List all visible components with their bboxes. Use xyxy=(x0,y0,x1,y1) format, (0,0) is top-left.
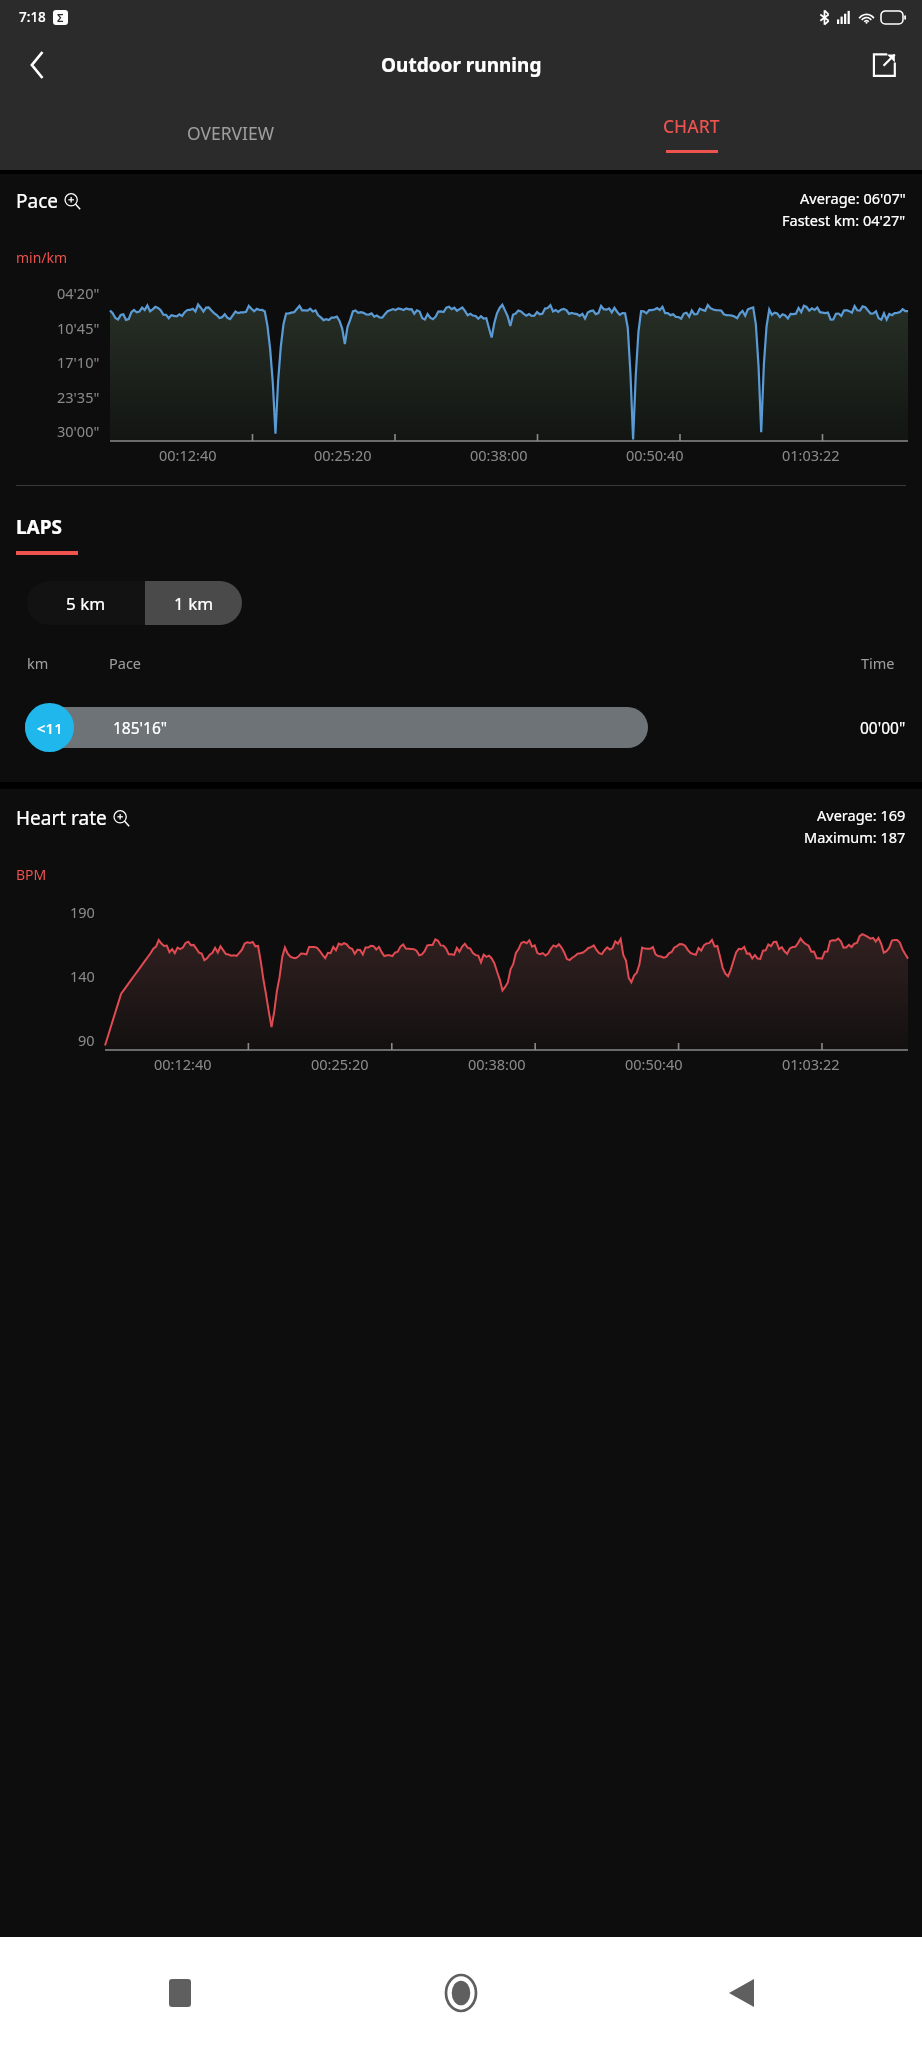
staticText: 00:38:00 xyxy=(470,445,528,465)
staticText: BPM xyxy=(16,865,47,884)
staticText: 5 km xyxy=(66,592,106,615)
staticText: <11 xyxy=(37,718,63,738)
staticText: 00:38:00 xyxy=(468,1054,526,1074)
staticText: 00'00" xyxy=(860,717,906,738)
staticText: 01:03:22 xyxy=(782,445,840,465)
staticText: Pace xyxy=(109,653,142,673)
button[interactable]: Pace xyxy=(16,188,81,214)
button[interactable]: 5 km xyxy=(27,581,145,625)
staticText: Time xyxy=(861,653,895,673)
staticText: 10'45" xyxy=(57,318,100,338)
staticText: 30'00" xyxy=(57,421,100,441)
staticText: 90 xyxy=(78,1030,95,1050)
staticText: 190 xyxy=(70,902,95,922)
button[interactable]: Heart rate xyxy=(16,805,130,831)
button[interactable]: OVERVIEW xyxy=(0,96,461,170)
staticText: 01:03:22 xyxy=(782,1054,840,1074)
staticText: Fastest km: 04'27" xyxy=(782,210,906,230)
staticText: Outdoor running xyxy=(381,52,542,78)
staticText: Pace xyxy=(16,188,58,214)
button[interactable]: Back xyxy=(14,41,62,89)
staticText: 17'10" xyxy=(57,352,100,372)
staticText: 00:12:40 xyxy=(154,1054,212,1074)
staticText: 23'35" xyxy=(57,387,100,407)
staticText: Maximum: 187 xyxy=(804,827,906,847)
button[interactable]: 185'16" xyxy=(25,703,906,752)
staticText: 00:50:40 xyxy=(625,1054,683,1074)
staticText: CHART xyxy=(663,114,720,138)
staticText: LAPS xyxy=(16,514,63,540)
staticText: min/km xyxy=(16,248,68,267)
button[interactable]: Back xyxy=(601,1937,882,2048)
staticText: 04'20" xyxy=(57,283,100,303)
staticText: 140 xyxy=(70,966,95,986)
button[interactable]: Home xyxy=(320,1937,601,2048)
staticText: 00:50:40 xyxy=(626,445,684,465)
staticText: km xyxy=(27,653,49,673)
staticText: 7:18 xyxy=(19,8,46,26)
staticText: Σ xyxy=(57,10,64,25)
staticText: 00:12:40 xyxy=(159,445,217,465)
staticText: OVERVIEW xyxy=(187,121,275,145)
staticText: 00:25:20 xyxy=(314,445,372,465)
staticText: 1 km xyxy=(174,592,214,615)
button[interactable]: 1 km xyxy=(145,581,242,625)
button[interactable]: Share xyxy=(860,41,908,89)
staticText: Average: 06'07" xyxy=(800,188,906,208)
staticText: Average: 169 xyxy=(817,805,906,825)
button[interactable]: Recent apps xyxy=(40,1937,320,2048)
staticText: 185'16" xyxy=(113,717,168,738)
button[interactable]: CHART xyxy=(461,96,922,170)
staticText: 00:25:20 xyxy=(311,1054,369,1074)
staticText: Heart rate xyxy=(16,805,107,831)
